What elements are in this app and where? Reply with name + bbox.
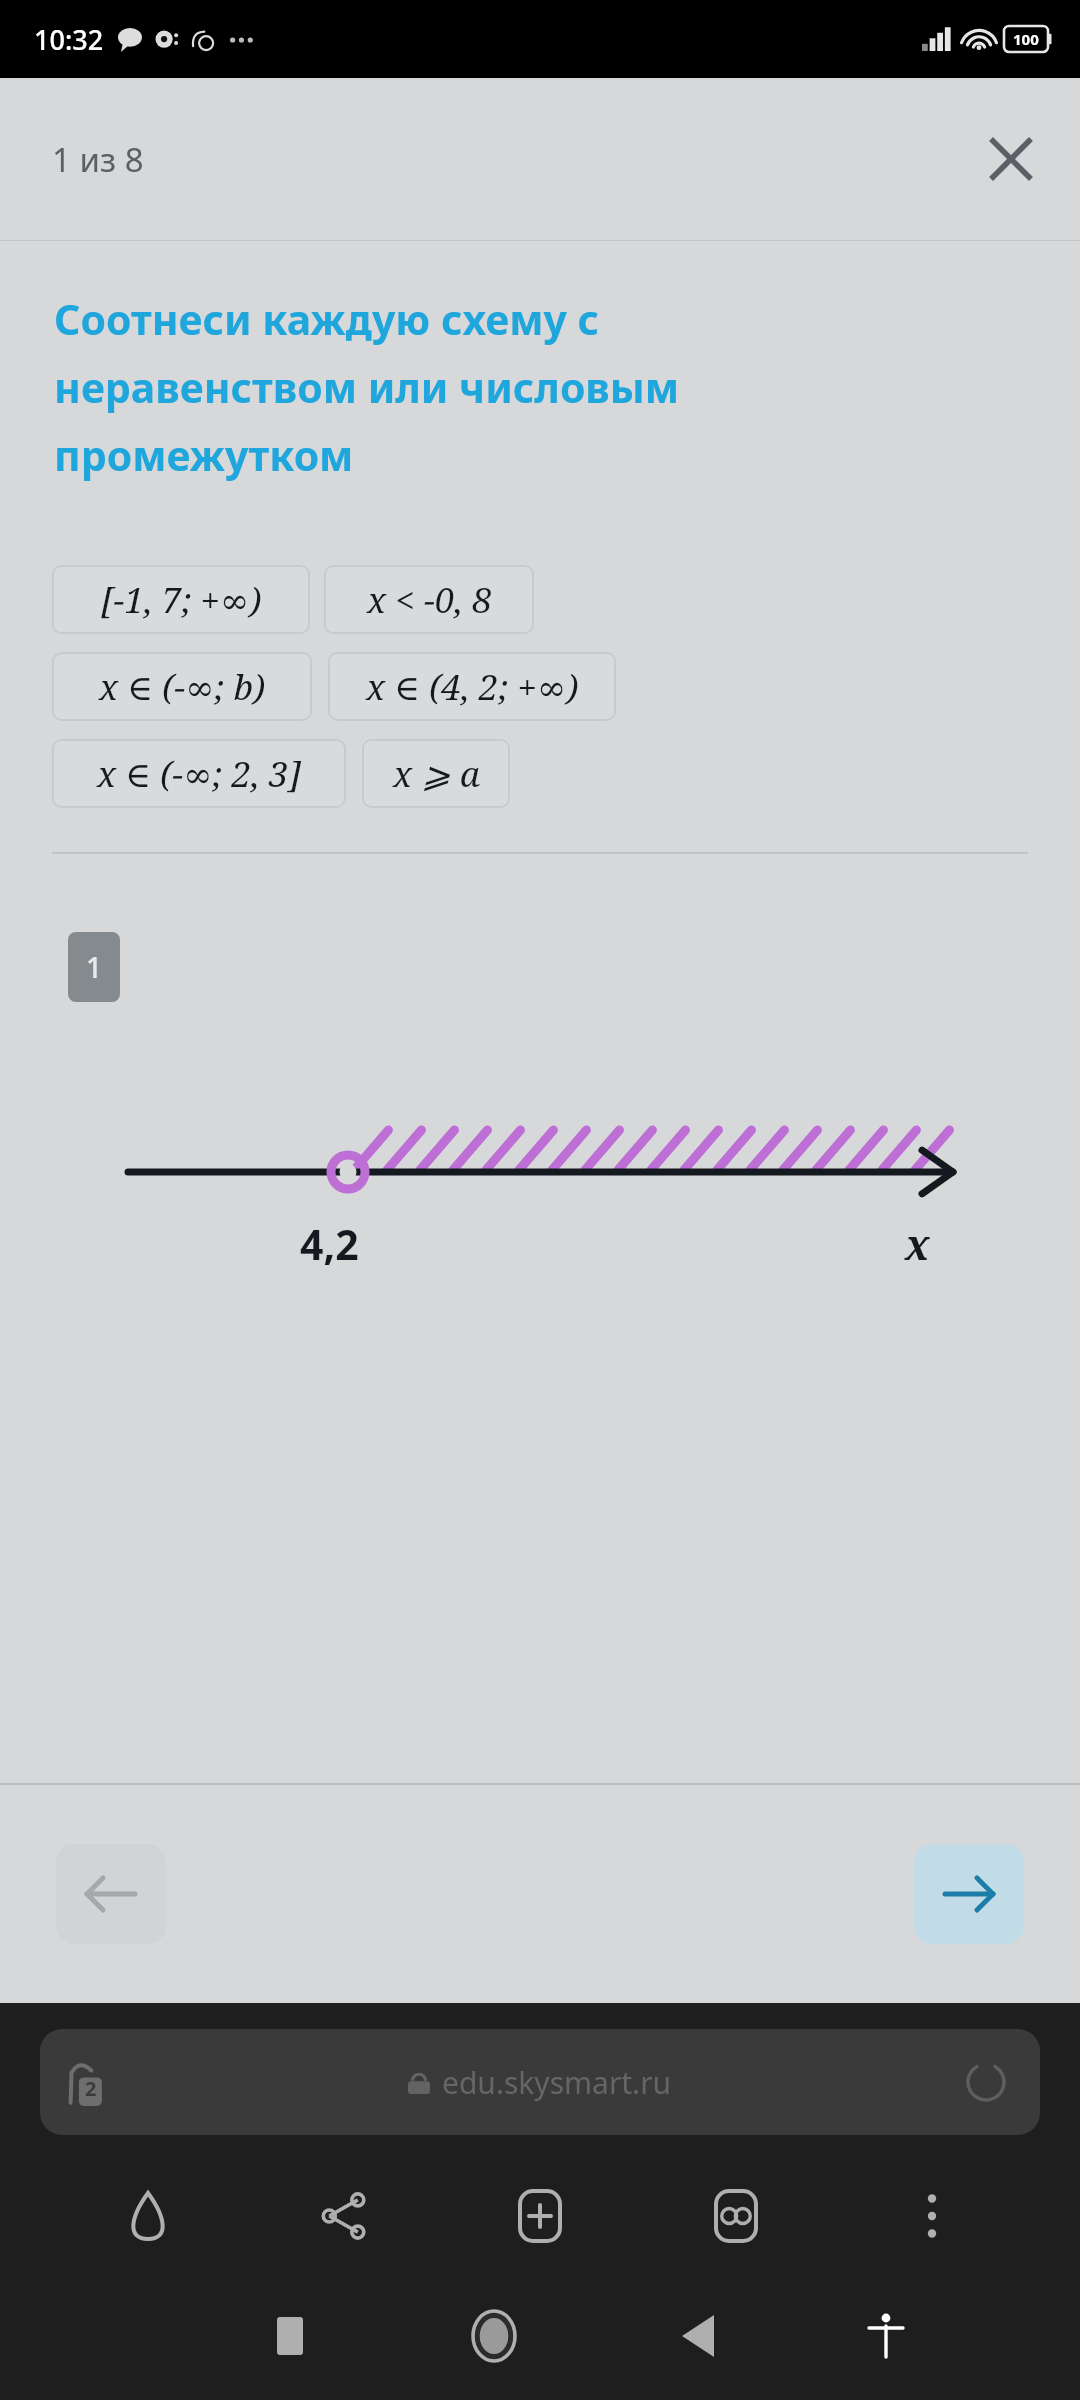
staticText: edu.skysmart.ru	[442, 2062, 672, 2103]
staticText: x	[905, 1216, 930, 1272]
button[interactable]: x < −0, 8	[324, 565, 534, 634]
button[interactable]: More options	[884, 2168, 980, 2264]
staticText: 10:32	[34, 21, 104, 58]
button[interactable]: Share	[296, 2168, 392, 2264]
button[interactable]: x ∈ (4, 2; +∞)	[328, 652, 616, 721]
button[interactable]: Tabs	[688, 2168, 784, 2264]
staticText: x < −0, 8	[367, 576, 492, 624]
button[interactable]: x ⩾ a	[362, 739, 510, 808]
button[interactable]: x ∈ (−∞; 2, 3]	[52, 739, 346, 808]
button[interactable]: New tab	[492, 2168, 588, 2264]
button[interactable]: 1	[68, 932, 120, 1002]
button[interactable]: Back	[660, 2298, 736, 2374]
button[interactable]: Close	[974, 122, 1048, 196]
button[interactable]: Next	[914, 1844, 1024, 1944]
staticText: Соотнеси каждую схему с	[54, 291, 600, 347]
staticText: x ∈ (−∞; 2, 3]	[97, 750, 302, 798]
staticText: 4,2	[300, 1216, 359, 1272]
staticText: неравенством или числовым	[54, 359, 680, 415]
button[interactable]: Accessibility	[848, 2298, 924, 2374]
button[interactable]: [−1, 7; +∞)	[52, 565, 310, 634]
staticText: 100	[1013, 29, 1039, 49]
staticText: x ∈ (4, 2; +∞)	[366, 663, 579, 711]
button[interactable]: Recents	[252, 2298, 328, 2374]
button[interactable]: 2	[40, 2029, 1040, 2135]
staticText: [−1, 7; +∞)	[101, 576, 262, 624]
button[interactable]: Previous	[56, 1844, 166, 1944]
button[interactable]: Reload	[960, 2056, 1012, 2108]
staticText: x ⩾ a	[393, 750, 480, 798]
staticText: 1	[86, 948, 103, 986]
staticText: 1 из 8	[52, 137, 144, 182]
button[interactable]: x ∈ (−∞; b)	[52, 652, 312, 721]
button[interactable]: Home	[456, 2298, 532, 2374]
staticText: x ∈ (−∞; b)	[99, 663, 266, 711]
button[interactable]: Home	[100, 2168, 196, 2264]
staticText: 2	[85, 2075, 97, 2102]
staticText: промежутком	[54, 427, 354, 483]
